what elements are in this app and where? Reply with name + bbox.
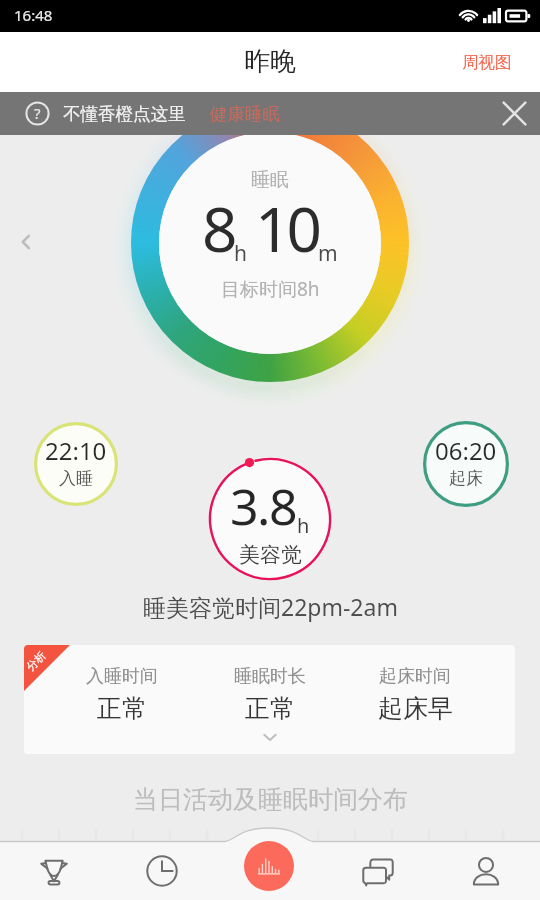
staticText: h: [297, 512, 310, 539]
staticText: 入睡: [59, 468, 93, 489]
staticText: ?: [34, 103, 41, 123]
staticText: 起床: [449, 468, 483, 489]
staticText: 美容觉: [239, 542, 302, 568]
staticText: 睡美容觉时间22pm-2am: [143, 591, 398, 622]
staticText: 睡眠: [251, 168, 289, 192]
button[interactable]: 06:20: [423, 421, 509, 507]
button[interactable]: Profile: [432, 842, 540, 900]
staticText: 3.8: [230, 472, 297, 540]
button[interactable]: 22:10: [34, 422, 118, 506]
button[interactable]: 周视图: [434, 36, 540, 89]
staticText: 不懂香橙点这里: [63, 103, 186, 125]
button[interactable]: Activity: [244, 841, 294, 891]
staticText: 16:48: [14, 5, 53, 25]
button[interactable]: ?: [0, 92, 540, 135]
staticText: h: [234, 239, 247, 268]
staticText: 起床早: [378, 693, 453, 724]
button[interactable]: Close: [489, 92, 540, 135]
staticText: 8: [202, 186, 234, 270]
staticText: 周视图: [462, 52, 512, 73]
button[interactable]: Achievements: [0, 842, 108, 900]
staticText: 正常: [97, 693, 147, 724]
staticText: 正常: [245, 693, 295, 724]
staticText: 10: [255, 186, 318, 270]
staticText: m: [318, 239, 338, 268]
staticText: 当日活动及睡眠时间分布: [133, 784, 408, 815]
button[interactable]: Messages: [324, 842, 432, 900]
button[interactable]: 入睡时间: [24, 645, 515, 754]
button[interactable]: 3.8: [204, 453, 336, 585]
staticText: 分析: [24, 648, 49, 674]
staticText: 起床时间: [379, 665, 451, 688]
staticText: 入睡时间: [86, 665, 158, 688]
staticText: 昨晚: [244, 45, 296, 78]
button[interactable]: History: [108, 842, 216, 900]
staticText: 健康睡眠: [210, 103, 280, 125]
staticText: 22:10: [45, 434, 107, 467]
staticText: 目标时间8h: [221, 276, 320, 302]
staticText: 睡眠时长: [234, 665, 306, 688]
staticText: 06:20: [435, 434, 497, 467]
button[interactable]: Previous day: [10, 226, 42, 258]
